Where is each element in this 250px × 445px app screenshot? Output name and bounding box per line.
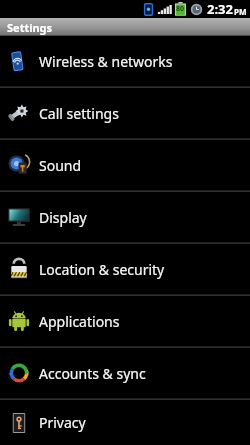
button[interactable]: Privacy — [0, 400, 250, 445]
staticText: Call settings — [39, 104, 119, 123]
staticText: Accounts & sync — [39, 364, 146, 383]
button[interactable]: Wireless & networks — [0, 36, 250, 86]
button[interactable]: Location & security — [0, 244, 250, 294]
staticText: Display — [39, 208, 87, 227]
button[interactable]: Call settings — [0, 88, 250, 138]
staticText: 80 — [176, 4, 185, 14]
button[interactable]: Applications — [0, 296, 250, 346]
staticText: Settings — [7, 20, 53, 35]
button[interactable]: Display — [0, 192, 250, 242]
staticText: Wireless & networks — [39, 52, 173, 71]
staticText: 2:32 — [207, 0, 233, 18]
staticText: Privacy — [39, 413, 86, 432]
staticText: Sound — [39, 156, 82, 175]
staticText: Location & security — [39, 260, 165, 279]
button[interactable]: Accounts & sync — [0, 348, 250, 398]
staticText: Applications — [39, 312, 120, 331]
button[interactable]: Sound — [0, 140, 250, 190]
staticText: PM — [234, 6, 247, 17]
